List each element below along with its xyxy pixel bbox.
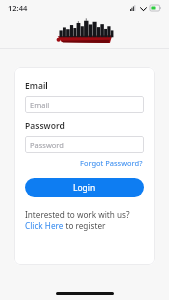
button[interactable]: Forgot Password? bbox=[79, 157, 144, 169]
staticText: Interested to work with us? Click Here t… bbox=[25, 209, 144, 231]
other: App logo bbox=[56, 20, 114, 44]
button[interactable]: Email bbox=[25, 96, 144, 113]
staticText: Email bbox=[25, 80, 48, 92]
staticText: Password bbox=[25, 120, 65, 132]
button[interactable]: Interested to work with us? Click Here t… bbox=[25, 209, 144, 231]
staticText: 12:44 bbox=[8, 3, 28, 13]
staticText: Login bbox=[73, 182, 96, 194]
staticText: Email bbox=[30, 100, 50, 110]
button[interactable]: Password bbox=[25, 136, 144, 153]
staticText: Password bbox=[30, 140, 64, 150]
button[interactable]: Login bbox=[25, 178, 144, 197]
staticText: Forgot Password? bbox=[80, 158, 143, 168]
